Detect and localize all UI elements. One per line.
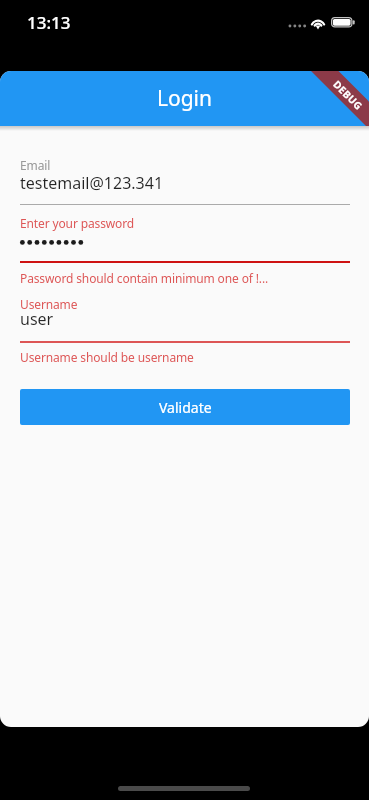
staticText: Username should be username <box>20 349 194 365</box>
staticText: Login <box>157 84 213 113</box>
button[interactable]: Email <box>20 153 350 205</box>
staticText: Username <box>20 296 78 312</box>
button[interactable]: Validate <box>20 389 350 425</box>
staticText: Validate <box>159 398 212 417</box>
staticText: Password should contain minimum one of !… <box>20 270 269 286</box>
staticText: Email <box>20 157 51 173</box>
staticText: user <box>20 308 54 330</box>
staticText: DEBUG <box>330 77 366 113</box>
staticText: Enter your password <box>20 215 135 231</box>
button[interactable]: Username <box>20 292 350 343</box>
staticText: testemail@123.341 <box>20 172 164 194</box>
staticText: 13:13 <box>27 11 71 34</box>
button[interactable]: Enter your password <box>20 211 350 263</box>
